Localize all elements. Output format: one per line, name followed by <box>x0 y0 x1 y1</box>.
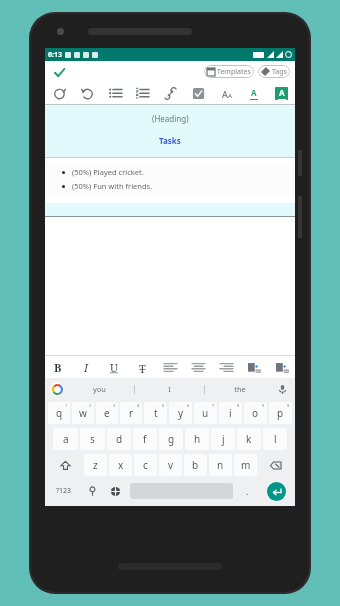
button[interactable]: j <box>211 428 235 450</box>
button[interactable]: Strikethrough <box>132 357 152 377</box>
button[interactable]: x <box>109 454 132 476</box>
button[interactable]: Font size <box>216 83 236 103</box>
staticText: 9 <box>262 403 265 408</box>
button[interactable]: a <box>53 428 78 450</box>
staticText: 3 <box>113 403 116 408</box>
button[interactable]: Shift <box>48 454 82 476</box>
button[interactable]: m <box>234 454 257 476</box>
button[interactable]: y <box>169 402 192 424</box>
button[interactable]: Italic <box>76 357 96 377</box>
button[interactable]: . <box>236 480 259 502</box>
button[interactable]: Highlight colour <box>271 83 291 103</box>
staticText: b <box>192 458 199 472</box>
staticText: g <box>168 432 175 446</box>
staticText: 8 <box>237 403 240 408</box>
button[interactable]: p <box>269 402 292 424</box>
button[interactable]: the <box>205 378 274 400</box>
staticText: a <box>63 432 69 446</box>
button[interactable]: u <box>194 402 217 424</box>
button[interactable]: Voice input <box>274 381 290 397</box>
button[interactable]: Text colour <box>243 83 263 103</box>
staticText: x <box>118 458 124 472</box>
staticText: 7 <box>212 403 215 408</box>
staticText: the <box>234 384 246 394</box>
button[interactable]: Bold <box>48 357 68 377</box>
staticText: 2 <box>89 403 92 408</box>
button[interactable]: Emoji <box>82 480 103 502</box>
staticText: 4 <box>137 403 140 408</box>
button[interactable]: Numbered list <box>132 83 152 103</box>
staticText: p <box>277 406 284 420</box>
staticText: 6:13 <box>48 50 62 60</box>
staticText: A <box>222 88 228 100</box>
staticText: c <box>143 458 148 472</box>
button[interactable]: Backspace <box>259 454 292 476</box>
button[interactable]: e <box>96 402 118 424</box>
button[interactable]: Underline <box>104 357 124 377</box>
button[interactable]: Change language <box>105 480 126 502</box>
button[interactable]: Align left <box>160 357 180 377</box>
button[interactable]: l <box>263 428 287 450</box>
button[interactable]: d <box>107 428 131 450</box>
button[interactable]: i <box>219 402 242 424</box>
staticText: U <box>110 360 118 375</box>
button[interactable]: o <box>244 402 267 424</box>
staticText: u <box>202 406 209 420</box>
staticText: (50%) Fun with friends. <box>72 181 153 191</box>
staticText: ?123 <box>56 486 72 496</box>
staticText: e <box>104 406 110 420</box>
button[interactable]: Undo <box>77 83 97 103</box>
staticText: f <box>143 432 147 446</box>
staticText: k <box>246 432 252 446</box>
staticText: you <box>93 384 106 394</box>
button[interactable]: ?123 <box>47 480 81 502</box>
button[interactable]: I <box>135 378 204 400</box>
staticText: I <box>84 360 89 375</box>
button[interactable]: Insert link <box>160 83 180 103</box>
staticText: A <box>251 87 257 98</box>
button[interactable]: Enter <box>267 482 286 501</box>
button[interactable]: s <box>80 428 105 450</box>
staticText: (50%) Played cricket. <box>72 167 144 177</box>
button[interactable]: Save <box>50 63 68 81</box>
staticText: T <box>139 361 146 374</box>
staticText: s <box>90 432 95 446</box>
button[interactable]: k <box>237 428 261 450</box>
staticText: w <box>79 406 87 420</box>
button[interactable]: Insert image <box>244 357 264 377</box>
button[interactable]: Insert photo <box>272 357 292 377</box>
button[interactable]: t <box>144 402 167 424</box>
staticText: 6 <box>187 403 190 408</box>
staticText: 5 <box>162 403 165 408</box>
button[interactable]: h <box>185 428 209 450</box>
button[interactable]: Redo <box>49 83 69 103</box>
button[interactable]: v <box>159 454 182 476</box>
button[interactable]: f <box>133 428 157 450</box>
button[interactable]: c <box>134 454 157 476</box>
staticText: B <box>54 360 62 375</box>
staticText: Templates <box>217 67 251 77</box>
button[interactable]: Checklist <box>188 83 208 103</box>
button[interactable]: q <box>48 402 70 424</box>
button[interactable]: w <box>72 402 94 424</box>
staticText: h <box>194 432 201 446</box>
button[interactable]: b <box>184 454 207 476</box>
staticText: r <box>129 406 134 420</box>
staticText: v <box>168 458 174 472</box>
staticText: m <box>241 458 251 472</box>
button[interactable]: Templates <box>204 65 254 78</box>
button[interactable]: r <box>120 402 142 424</box>
button[interactable]: z <box>84 454 107 476</box>
button[interactable]: Align right <box>216 357 236 377</box>
button[interactable]: Bulleted list <box>105 83 125 103</box>
button[interactable]: Tags <box>258 65 290 78</box>
staticText: I <box>168 384 171 394</box>
button[interactable]: Align center <box>188 357 208 377</box>
button[interactable]: you <box>64 378 134 400</box>
staticText: q <box>56 406 63 420</box>
button[interactable]: g <box>159 428 183 450</box>
button[interactable]: n <box>209 454 232 476</box>
staticText: Tags <box>272 67 287 77</box>
button[interactable]: Google <box>50 382 64 396</box>
